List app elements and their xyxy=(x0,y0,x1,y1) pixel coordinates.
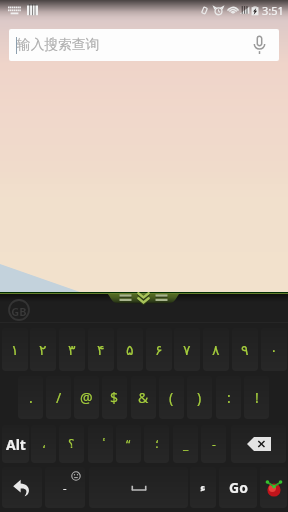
staticText: ۴ xyxy=(97,342,105,358)
button[interactable]: @ xyxy=(74,376,99,419)
staticText: ؛ xyxy=(155,437,159,451)
staticText: ! xyxy=(255,388,259,407)
staticText: - xyxy=(63,480,67,495)
staticText: ) xyxy=(197,388,202,407)
staticText: Alt xyxy=(6,435,26,454)
staticText: ۵ xyxy=(126,342,134,358)
staticText: ۱ xyxy=(11,342,19,358)
staticText: ۳ xyxy=(68,342,76,358)
button[interactable]: Voice search xyxy=(240,29,279,61)
staticText: - xyxy=(212,436,216,452)
staticText: ؟ xyxy=(68,437,75,451)
staticText: ۶ xyxy=(155,342,163,358)
button[interactable]: 输入搜索查询 xyxy=(9,29,279,61)
button[interactable]: ۳ xyxy=(59,328,85,371)
button[interactable]: Alt xyxy=(2,425,29,463)
button[interactable]: Space xyxy=(89,467,188,508)
staticText: “ xyxy=(126,436,131,452)
button[interactable]: ! xyxy=(244,376,269,419)
button[interactable]: ) xyxy=(187,376,212,419)
button[interactable]: ء xyxy=(190,467,216,508)
button[interactable]: ۰ xyxy=(261,328,287,371)
button[interactable]: ۶ xyxy=(146,328,172,371)
staticText: : xyxy=(227,388,231,407)
staticText: ، xyxy=(42,437,46,451)
staticText: & xyxy=(138,388,149,407)
staticText: $ xyxy=(110,388,119,407)
button[interactable]: ۷ xyxy=(174,328,200,371)
staticText: @ xyxy=(80,388,93,407)
button[interactable]: Emoji xyxy=(45,467,85,508)
staticText: ۸ xyxy=(212,342,220,358)
button[interactable]: & xyxy=(131,376,156,419)
staticText: ۲ xyxy=(39,342,47,358)
button[interactable]: ۴ xyxy=(88,328,114,371)
button[interactable]: : xyxy=(216,376,241,419)
staticText: ۹ xyxy=(241,342,249,358)
button[interactable]: Go xyxy=(219,467,257,508)
button[interactable]: “ xyxy=(116,425,141,463)
staticText: Go xyxy=(229,478,248,497)
staticText: _ xyxy=(183,436,189,452)
staticText: ء xyxy=(200,481,206,494)
button[interactable]: ؟ xyxy=(59,425,84,463)
staticText: ۷ xyxy=(183,342,191,358)
button[interactable]: Undo xyxy=(2,467,42,508)
button[interactable]: ؛ xyxy=(144,425,169,463)
button[interactable]: / xyxy=(46,376,71,419)
button[interactable]: ( xyxy=(159,376,184,419)
staticText: 输入搜索查询 xyxy=(17,36,100,53)
staticText: ۰ xyxy=(270,342,278,358)
button[interactable]: ۲ xyxy=(30,328,56,371)
staticText: ( xyxy=(169,388,174,407)
staticText: / xyxy=(56,388,62,407)
button[interactable]: Backspace xyxy=(231,425,286,463)
button[interactable]: . xyxy=(18,376,43,419)
button[interactable]: ، xyxy=(31,425,56,463)
button[interactable]: ۹ xyxy=(232,328,258,371)
button[interactable]: ۱ xyxy=(2,328,28,371)
button[interactable]: _ xyxy=(173,425,198,463)
button[interactable]: - xyxy=(201,425,226,463)
staticText: . xyxy=(29,388,33,407)
button[interactable]: ۵ xyxy=(117,328,143,371)
staticText: GB xyxy=(9,304,29,319)
button[interactable]: ۸ xyxy=(203,328,229,371)
button[interactable]: GO Keyboard xyxy=(260,467,287,508)
button[interactable]: $ xyxy=(102,376,127,419)
staticText: 3:51 xyxy=(262,3,284,18)
button[interactable]: ٔ xyxy=(88,425,113,463)
